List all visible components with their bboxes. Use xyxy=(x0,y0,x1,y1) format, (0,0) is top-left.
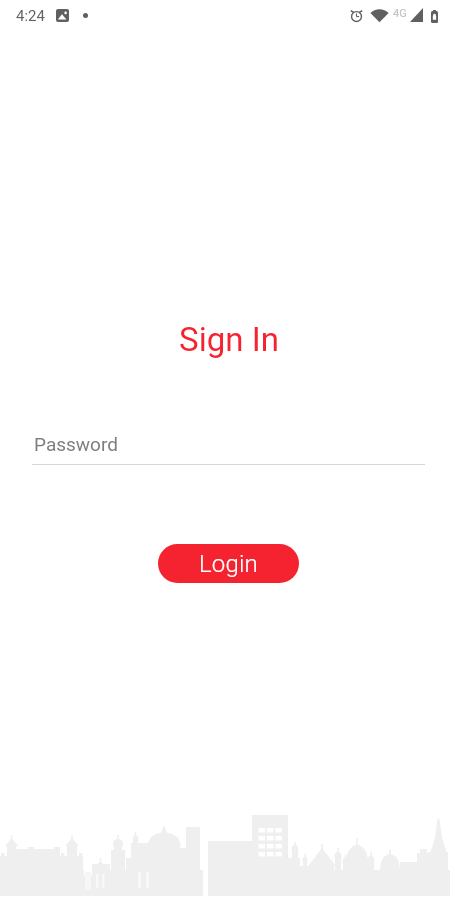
staticText: 4G xyxy=(393,7,407,20)
staticText: Sign In xyxy=(4,320,450,359)
staticText: Password xyxy=(34,433,118,455)
button[interactable]: Password xyxy=(32,425,425,469)
staticText: Login xyxy=(199,550,259,578)
other: Screenshot xyxy=(56,9,69,22)
staticText: 4:24 xyxy=(16,7,45,25)
button[interactable]: Login xyxy=(158,544,299,583)
